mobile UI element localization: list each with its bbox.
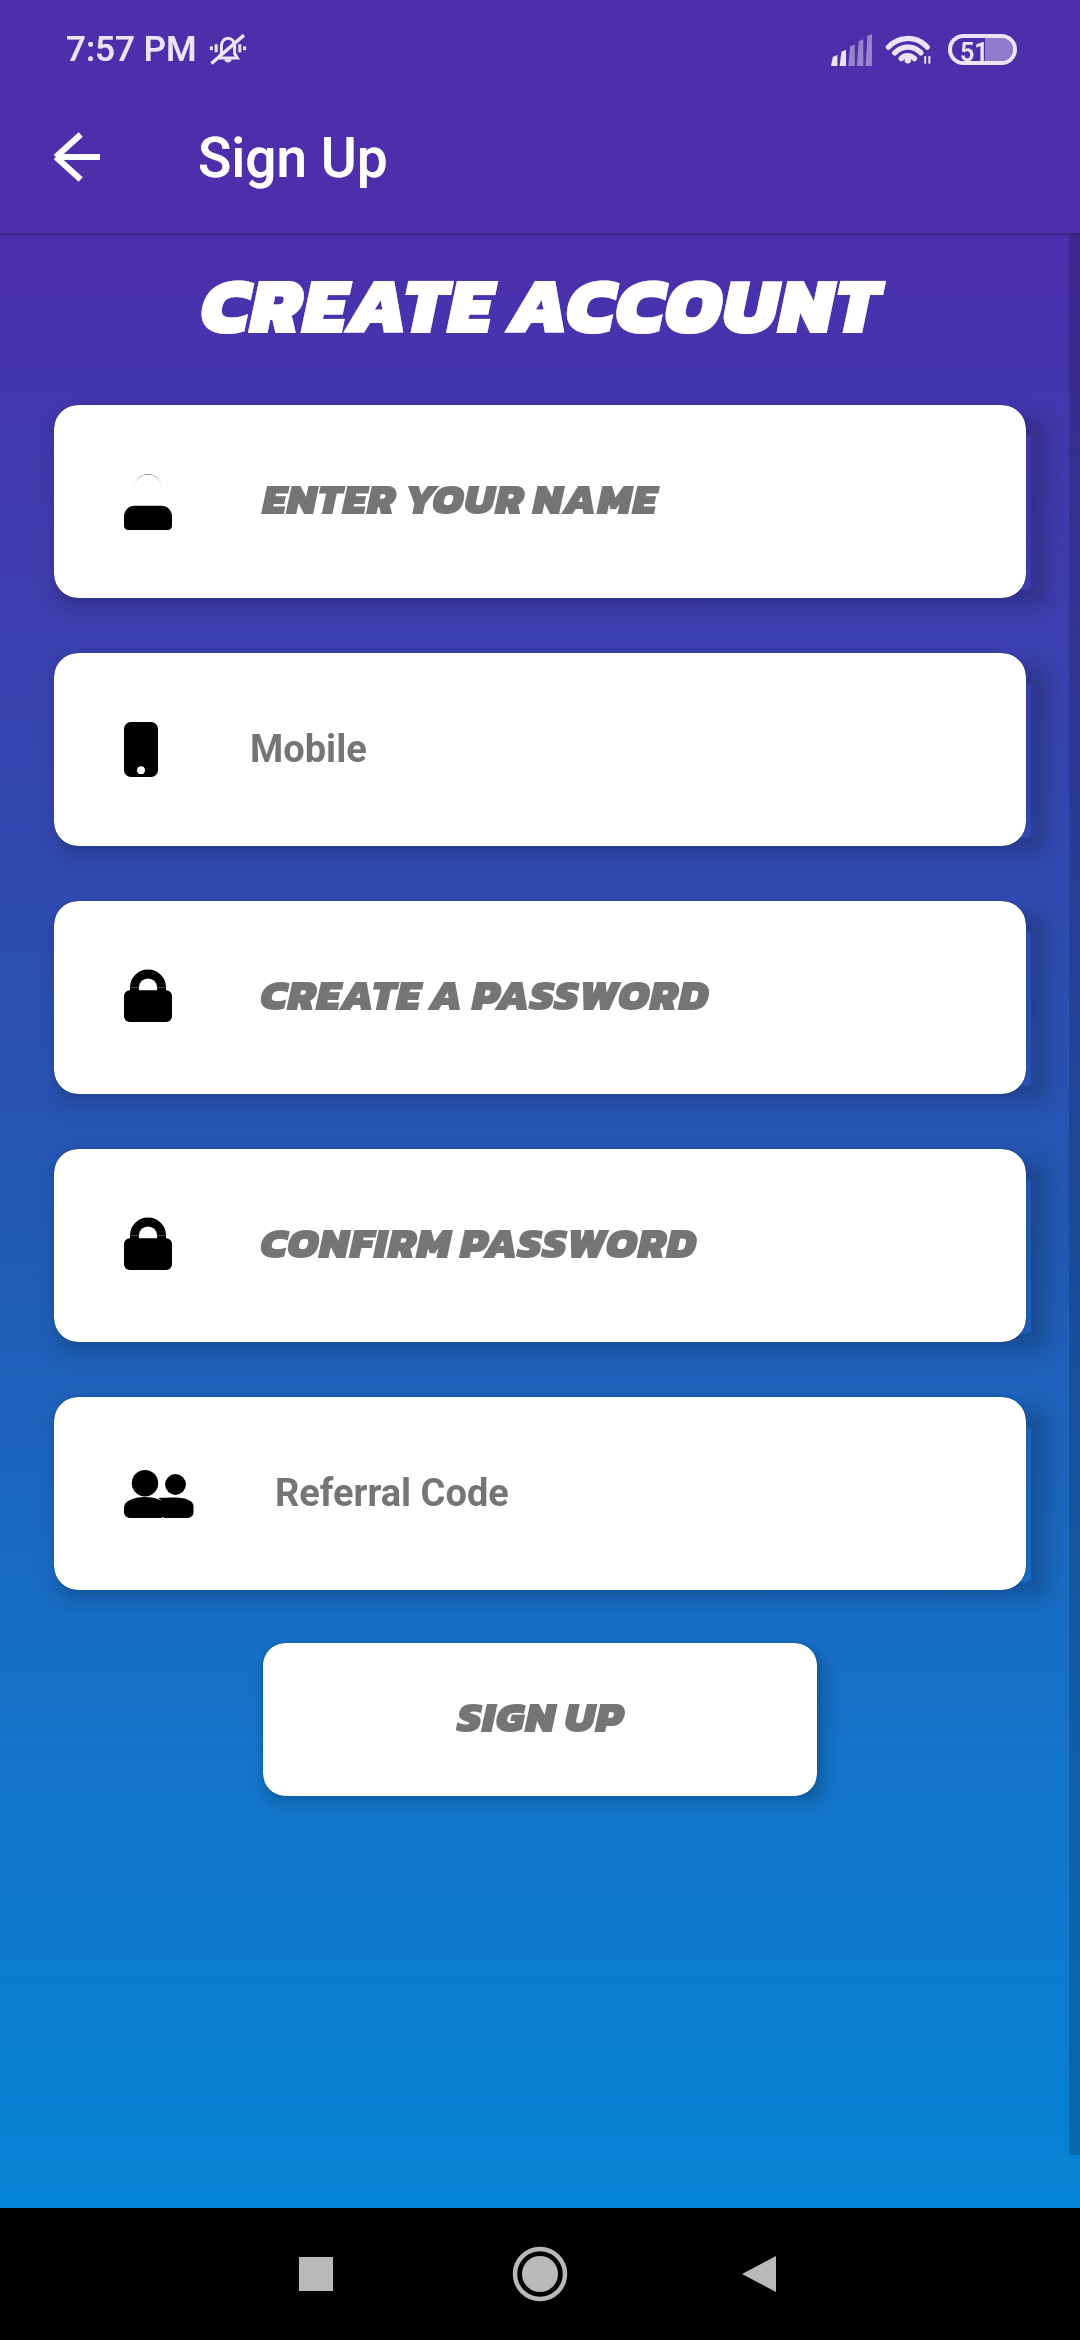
button[interactable]: CONFIRM PASSWORD: [54, 1149, 1026, 1342]
staticText: CONFIRM PASSWORD: [260, 1210, 697, 1276]
button[interactable]: CREATE A PASSWORD: [54, 901, 1026, 1094]
button[interactable]: Back: [699, 2214, 819, 2334]
staticText: 7:57 PM: [66, 29, 197, 70]
staticText: Referral Code: [275, 1471, 509, 1516]
button[interactable]: Referral Code: [54, 1397, 1026, 1590]
staticText: 51: [960, 38, 989, 61]
staticText: Sign Up: [198, 126, 388, 190]
staticText: CREATE ACCOUNT: [0, 245, 1080, 365]
button[interactable]: SIGN UP: [263, 1643, 817, 1796]
staticText: ENTER YOUR NAME: [262, 466, 657, 532]
staticText: Mobile: [250, 727, 367, 772]
button[interactable]: ENTER YOUR NAME: [54, 405, 1026, 598]
staticText: CREATE A PASSWORD: [260, 962, 709, 1028]
button[interactable]: Home: [480, 2214, 600, 2334]
button[interactable]: Back: [22, 102, 132, 212]
button[interactable]: Mobile: [54, 653, 1026, 846]
staticText: SIGN UP: [457, 1684, 624, 1750]
button[interactable]: Recents: [256, 2214, 376, 2334]
